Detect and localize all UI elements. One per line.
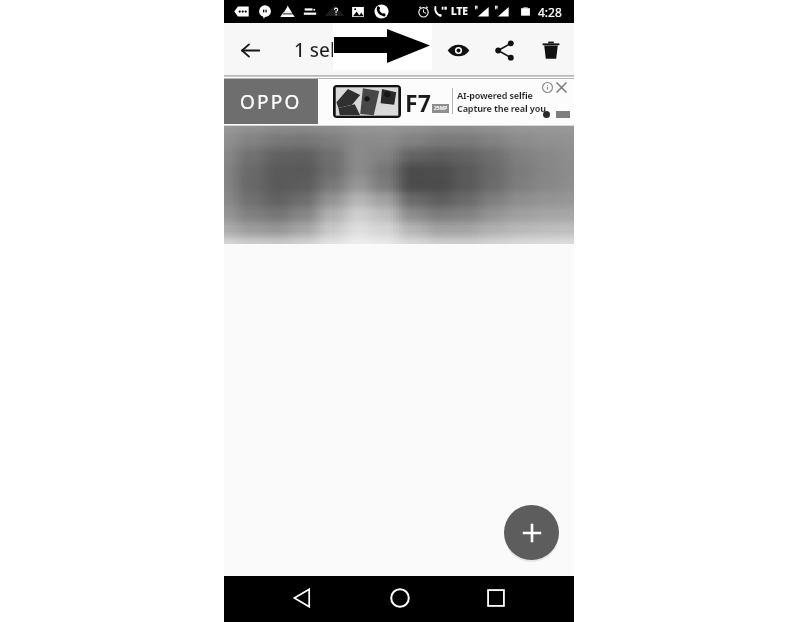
staticText: 25MP: [434, 105, 448, 112]
button[interactable]: Home: [378, 576, 422, 620]
button[interactable]: Delete: [530, 29, 572, 71]
button[interactable]: Back: [229, 29, 271, 71]
staticText: F7: [405, 87, 431, 118]
staticText: 4:28: [538, 4, 562, 20]
button[interactable]: Preview: [437, 29, 479, 71]
staticText: OPPO: [240, 89, 302, 115]
button[interactable]: Share: [483, 29, 525, 71]
button[interactable]: Recents: [474, 576, 518, 620]
staticText: Capture the real you: [457, 102, 546, 114]
staticText: 1 selected: [294, 37, 386, 63]
button[interactable]: Add: [504, 505, 559, 560]
button[interactable]: Back: [280, 576, 324, 620]
staticText: LTE: [451, 4, 468, 18]
staticText: AI-powered selfie: [457, 89, 533, 101]
